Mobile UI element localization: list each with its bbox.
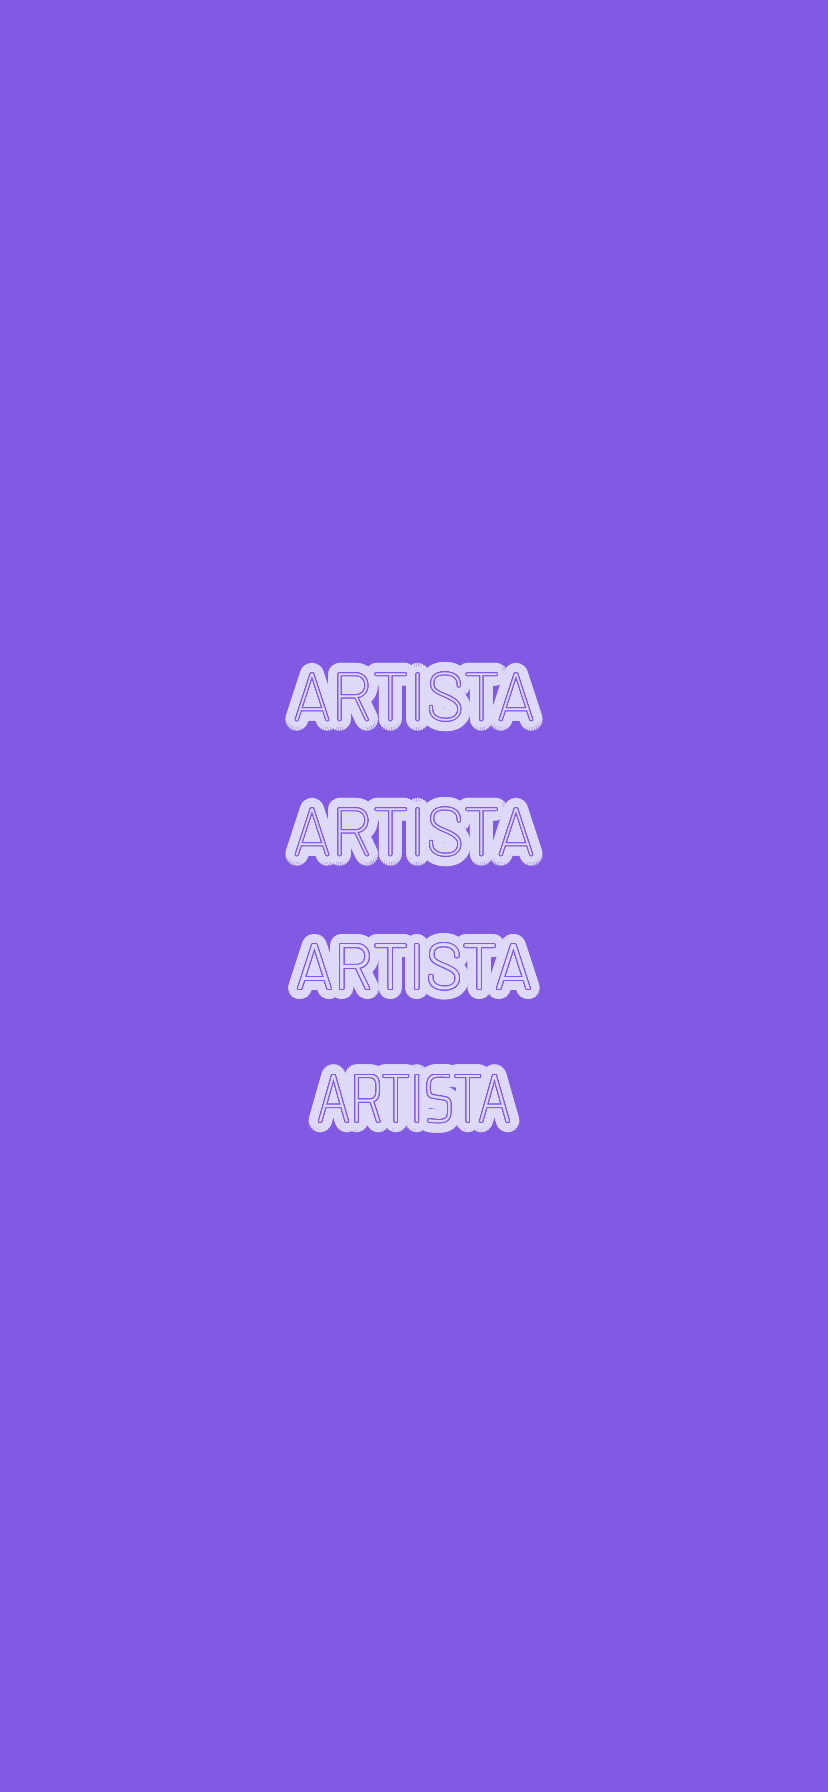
staticText: ARTISTA [295, 928, 532, 1005]
staticText: ARTISTA [317, 1056, 511, 1161]
staticText: ARTISTA [291, 791, 533, 871]
staticText: ARTISTA [295, 925, 532, 1002]
staticText: ARTISTA [296, 787, 538, 867]
staticText: ARTISTA [326, 1051, 520, 1155]
staticText: ARTISTA [295, 922, 532, 999]
staticText: ARTISTA [292, 788, 534, 868]
staticText: ARTISTA [291, 786, 533, 866]
staticText: ARTISTA [298, 926, 535, 1003]
staticText: ARTISTA [295, 926, 532, 1003]
staticText: ARTISTA [302, 658, 544, 738]
staticText: ARTISTA [298, 931, 535, 1008]
staticText: ARTISTA [310, 1048, 504, 1152]
staticText: ARTISTA [316, 1046, 510, 1151]
staticText: ARTISTA [294, 653, 536, 733]
staticText: ARTISTA [293, 660, 535, 740]
staticText: ARTISTA [322, 1050, 516, 1155]
staticText: ARTISTA [318, 1053, 512, 1158]
staticText: ARTISTA [310, 1038, 504, 1143]
staticText: ARTISTA [291, 795, 533, 875]
staticText: ARTISTA [296, 653, 538, 733]
staticText: ARTISTA [303, 656, 545, 736]
staticText: ARTISTA [298, 928, 535, 1004]
staticText: ARTISTA [287, 650, 529, 730]
staticText: ARTISTA [324, 1046, 518, 1151]
staticText: ARTISTA [289, 794, 531, 874]
staticText: ARTISTA [307, 1051, 501, 1155]
staticText: ARTISTA [316, 1045, 510, 1150]
staticText: ARTISTA [292, 789, 534, 869]
staticText: ARTISTA [320, 1048, 514, 1153]
staticText: ARTISTA [293, 643, 535, 723]
staticText: ARTISTA [290, 654, 532, 734]
staticText: ARTISTA [315, 1043, 509, 1148]
staticText: ARTISTA [294, 788, 536, 868]
staticText: ARTISTA [303, 931, 540, 1008]
staticText: ARTISTA [283, 658, 525, 738]
staticText: ARTISTA [320, 1047, 514, 1152]
staticText: ARTISTA [294, 789, 536, 869]
staticText: ARTISTA [292, 788, 534, 868]
staticText: ARTISTA [316, 1045, 510, 1150]
staticText: ARTISTA [298, 663, 540, 743]
staticText: ARTISTA [297, 931, 534, 1008]
staticText: ARTISTA [283, 649, 525, 729]
staticText: ARTISTA [303, 651, 545, 731]
staticText: ARTISTA [300, 916, 537, 993]
staticText: ARTISTA [294, 660, 536, 740]
staticText: ARTISTA [292, 788, 534, 868]
staticText: ARTISTA [292, 792, 534, 872]
staticText: ARTISTA [317, 1045, 511, 1150]
staticText: ARTISTA [300, 788, 542, 868]
staticText: ARTISTA [300, 655, 542, 735]
staticText: ARTISTA [292, 650, 534, 730]
staticText: ARTISTA [305, 927, 542, 1004]
staticText: ARTISTA [293, 788, 535, 868]
staticText: ARTISTA [290, 789, 532, 869]
staticText: ARTISTA [301, 782, 543, 862]
staticText: ARTISTA [296, 924, 533, 1001]
staticText: ARTISTA [290, 655, 532, 735]
staticText: ARTISTA [291, 778, 533, 858]
staticText: ARTISTA [292, 789, 534, 869]
staticText: ARTISTA [309, 1053, 503, 1157]
staticText: ARTISTA [295, 656, 537, 736]
staticText: ARTISTA [296, 782, 538, 862]
staticText: ARTISTA [293, 654, 535, 734]
staticText: ARTISTA [300, 652, 542, 732]
staticText: ARTISTA [296, 654, 538, 734]
staticText: ARTISTA [291, 660, 533, 740]
staticText: ARTISTA [296, 653, 538, 733]
staticText: ARTISTA [296, 926, 533, 1003]
staticText: ARTISTA [296, 925, 533, 1002]
staticText: ARTISTA [314, 1044, 508, 1149]
staticText: ARTISTA [285, 647, 527, 727]
staticText: ARTISTA [292, 789, 534, 869]
staticText: ARTISTA [301, 921, 538, 998]
staticText: ARTISTA [296, 926, 533, 1002]
staticText: ARTISTA [315, 1043, 509, 1148]
staticText: ARTISTA [293, 664, 535, 744]
staticText: ARTISTA [303, 919, 540, 996]
staticText: ARTISTA [316, 1046, 510, 1151]
staticText: ARTISTA [293, 782, 535, 862]
staticText: ARTISTA [288, 649, 530, 729]
staticText: ARTISTA [291, 656, 533, 736]
staticText: ARTISTA [317, 1047, 511, 1152]
staticText: ARTISTA [294, 654, 536, 734]
staticText: ARTISTA [290, 656, 532, 736]
staticText: ARTISTA [302, 793, 544, 873]
staticText: ARTISTA [288, 663, 530, 743]
staticText: ARTISTA [312, 1050, 506, 1155]
staticText: ARTISTA [293, 654, 535, 734]
staticText: ARTISTA [296, 791, 538, 871]
staticText: ARTISTA [286, 921, 523, 998]
staticText: ARTISTA [297, 919, 534, 995]
staticText: ARTISTA [298, 793, 540, 873]
staticText: ARTISTA [292, 925, 529, 1002]
staticText: ARTISTA [299, 924, 536, 1001]
staticText: ARTISTA [295, 925, 532, 1002]
staticText: ARTISTA [318, 1046, 512, 1151]
staticText: ARTISTA [294, 789, 536, 869]
staticText: ARTISTA [293, 915, 530, 992]
